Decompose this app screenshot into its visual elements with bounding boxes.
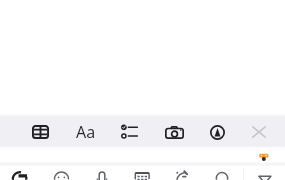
button[interactable]: Voice input: [92, 168, 112, 180]
button[interactable]: Sticker suggestion: [256, 149, 272, 165]
button[interactable]: Send: [252, 170, 278, 180]
button[interactable]: Settings: [212, 168, 232, 180]
button[interactable]: Close: [241, 114, 277, 150]
button[interactable]: Checklist: [112, 114, 148, 150]
button[interactable]: Gboard: [8, 168, 31, 180]
button[interactable]: Draw: [199, 114, 235, 150]
button[interactable]: Insert table: [22, 114, 59, 150]
staticText: Aa: [76, 121, 96, 143]
button[interactable]: Format text: [68, 114, 104, 150]
button[interactable]: Camera: [156, 114, 192, 150]
button[interactable]: Keyboard: [132, 168, 152, 180]
button[interactable]: Handwriting: [172, 168, 192, 180]
button[interactable]: Emoji: [50, 168, 72, 180]
